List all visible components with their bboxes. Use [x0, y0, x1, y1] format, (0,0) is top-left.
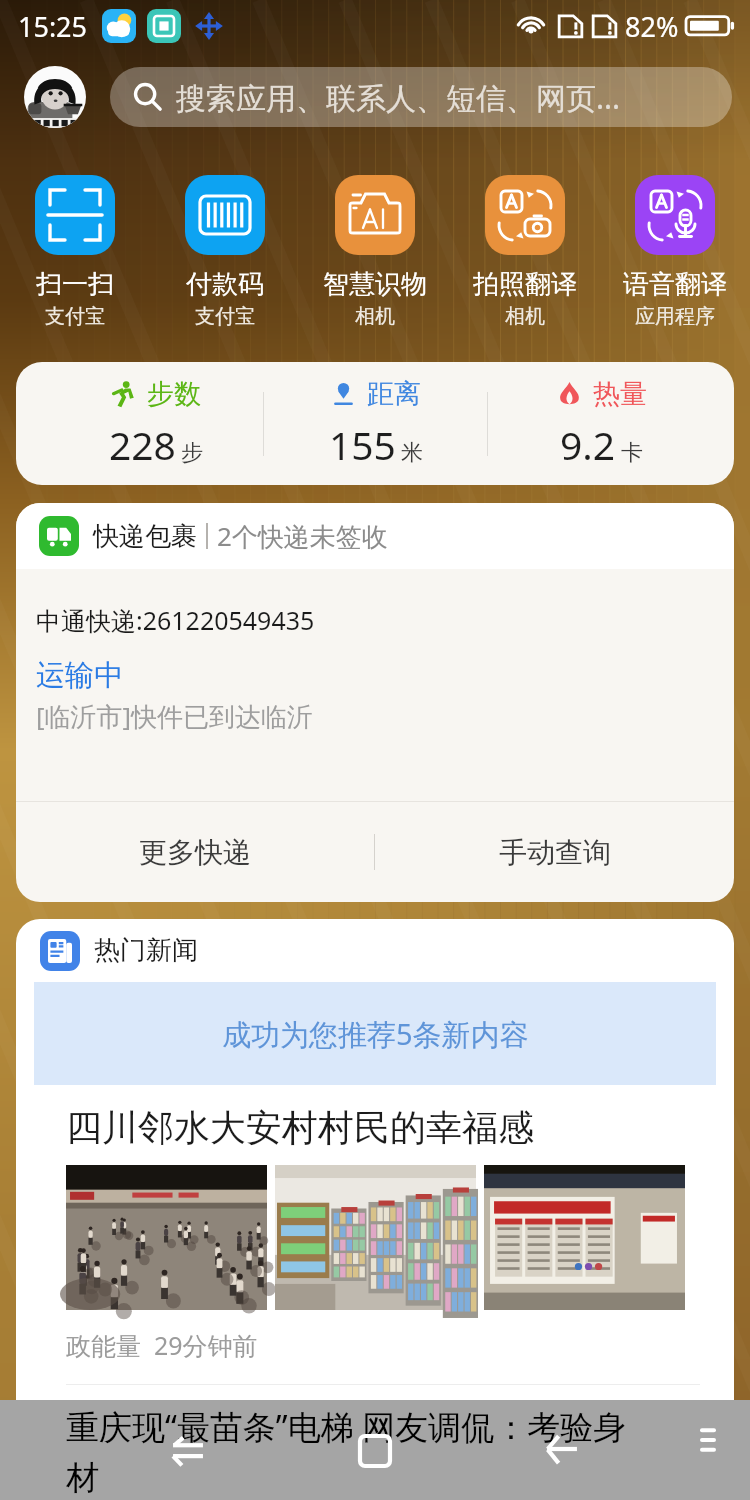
staticText: 相机 [355, 304, 395, 329]
button[interactable]: Back [153, 1416, 223, 1486]
staticText: 距离 [367, 377, 421, 411]
staticText: 语音翻译 [623, 268, 727, 301]
staticText: 9.2 [560, 418, 616, 471]
staticText: 更多快递 [139, 835, 251, 870]
staticText: [临沂市]快件已到达临沂 [36, 698, 314, 734]
staticText: 重庆现“最苗条”电梯 网友调侃：考验身材 [66, 1404, 642, 1498]
staticText: 支付宝 [195, 304, 255, 329]
staticText: 228 [109, 418, 176, 471]
staticText: 拍照翻译 [473, 268, 577, 301]
staticText: 快递包裹 [93, 520, 197, 553]
staticText: 155 [329, 418, 396, 471]
staticText: 米 [401, 439, 423, 467]
staticText: 应用程序 [635, 304, 715, 329]
staticText: 热门新闻 [94, 934, 198, 967]
button[interactable]: 拍照翻译 [450, 175, 600, 329]
button[interactable]: 付款码 [150, 175, 300, 329]
button[interactable]: More options [682, 1414, 734, 1466]
button[interactable]: 中通快递:261220549435 [16, 569, 734, 801]
staticText: 四川邻水大安村村民的幸福感 [66, 1105, 534, 1150]
staticText: 搜索应用、联系人、短信、网页... [176, 77, 621, 118]
button[interactable]: 扫一扫 [0, 175, 150, 329]
staticText: 82% [625, 8, 679, 45]
button[interactable]: 智慧识物 [300, 175, 450, 329]
staticText: 扫一扫 [36, 268, 114, 301]
button[interactable]: 快递包裹 [16, 503, 734, 569]
staticText: 手动查询 [499, 835, 611, 870]
staticText: 步数 [147, 377, 201, 411]
staticText: 智慧识物 [323, 268, 427, 301]
staticText: 2个快递未签收 [217, 518, 388, 554]
staticText: 步 [181, 439, 203, 467]
staticText: 热量 [593, 377, 647, 411]
button[interactable]: 手动查询 [375, 802, 734, 902]
staticText: 支付宝 [45, 304, 105, 329]
button[interactable]: Profile [24, 66, 86, 128]
button[interactable]: Home [340, 1416, 410, 1486]
staticText: 卡 [621, 439, 643, 467]
button[interactable]: 热门新闻 [16, 919, 734, 982]
button[interactable]: 语音翻译 [600, 175, 750, 329]
button[interactable]: 成功为您推荐5条新内容 [34, 982, 716, 1085]
button[interactable]: 更多快递 [16, 802, 374, 902]
button[interactable]: Recents [527, 1414, 597, 1484]
staticText: 15:25 [18, 8, 88, 45]
staticText: 相机 [505, 304, 545, 329]
staticText: 政能量 29分钟前 [66, 1328, 258, 1362]
button[interactable]: 搜索应用、联系人、短信、网页... [110, 67, 732, 127]
staticText: 中通快递:261220549435 [36, 603, 315, 637]
staticText: 运输中 [36, 657, 123, 694]
button[interactable]: 步数 [16, 362, 734, 485]
staticText: 付款码 [186, 268, 264, 301]
staticText: 成功为您推荐5条新内容 [222, 1014, 529, 1054]
button[interactable]: 四川邻水大安村村民的幸福感 [16, 1085, 734, 1362]
